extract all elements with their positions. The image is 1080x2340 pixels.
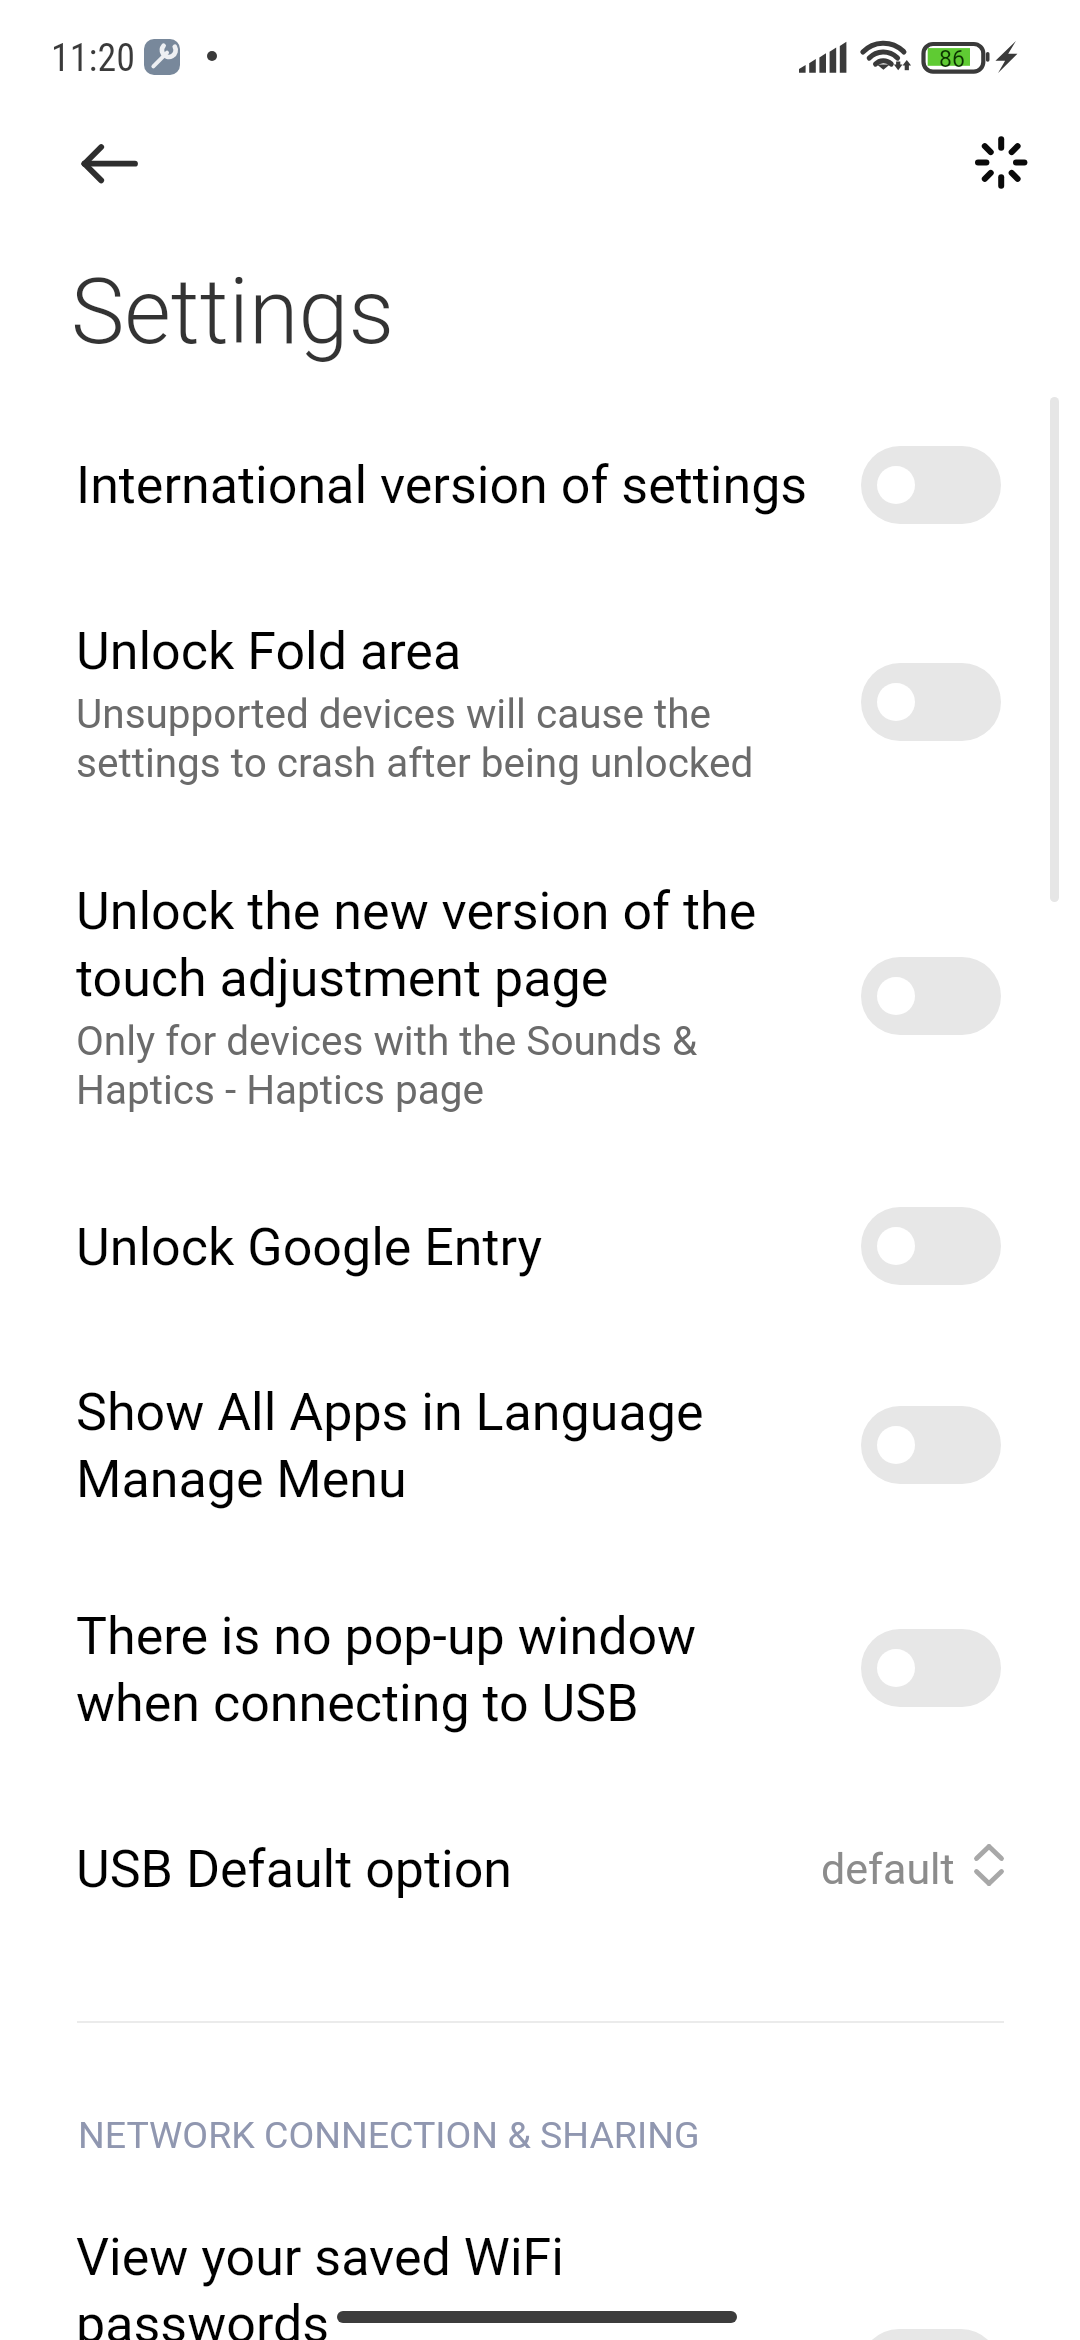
button[interactable]: Toggle bbox=[861, 957, 1001, 1035]
button[interactable]: Toggle bbox=[861, 1406, 1001, 1484]
staticText: default bbox=[821, 1844, 955, 1894]
button[interactable]: Unlock Fold area bbox=[76, 621, 836, 787]
button[interactable]: USB Default option bbox=[76, 1839, 836, 1900]
button[interactable]: Unlock Google Entry bbox=[76, 1217, 836, 1278]
button[interactable]: Toggle bbox=[861, 1207, 1001, 1285]
button[interactable]: View your saved WiFi passwords bbox=[76, 2227, 836, 2340]
staticText: 11:20 bbox=[51, 36, 135, 81]
button[interactable]: Toggle bbox=[860, 2329, 1000, 2340]
button[interactable]: Loading bbox=[956, 118, 1046, 208]
button[interactable]: Toggle bbox=[861, 663, 1001, 741]
button[interactable]: Toggle bbox=[861, 446, 1001, 524]
button[interactable]: Toggle bbox=[861, 1629, 1001, 1707]
staticText: 86 bbox=[939, 46, 965, 73]
button[interactable]: International version of settings bbox=[76, 455, 836, 516]
staticText: Settings bbox=[71, 260, 395, 365]
staticText: Unsupported devices will cause the setti… bbox=[76, 690, 754, 787]
button[interactable]: USB Default option: default bbox=[806, 1832, 1012, 1902]
staticText: View your saved WiFi passwords bbox=[76, 2227, 564, 2340]
staticText: Show All Apps in Language Manage Menu bbox=[76, 1382, 704, 1510]
button[interactable]: Show All Apps in Language Manage Menu bbox=[76, 1382, 836, 1510]
staticText: Unlock Fold area bbox=[76, 621, 462, 682]
button[interactable]: There is no pop-up window when connectin… bbox=[76, 1606, 836, 1734]
staticText: NETWORK CONNECTION & SHARING bbox=[78, 2113, 700, 2157]
staticText: Only for devices with the Sounds & Hapti… bbox=[76, 1017, 698, 1114]
button[interactable]: Back bbox=[67, 123, 157, 213]
staticText: Unlock Google Entry bbox=[76, 1217, 543, 1278]
staticText: USB Default option bbox=[76, 1839, 513, 1900]
staticText: Unlock the new version of the touch adju… bbox=[76, 881, 757, 1009]
staticText: There is no pop-up window when connectin… bbox=[76, 1606, 697, 1734]
button[interactable]: Unlock the new version of the touch adju… bbox=[76, 881, 836, 1114]
staticText: International version of settings bbox=[76, 455, 808, 516]
